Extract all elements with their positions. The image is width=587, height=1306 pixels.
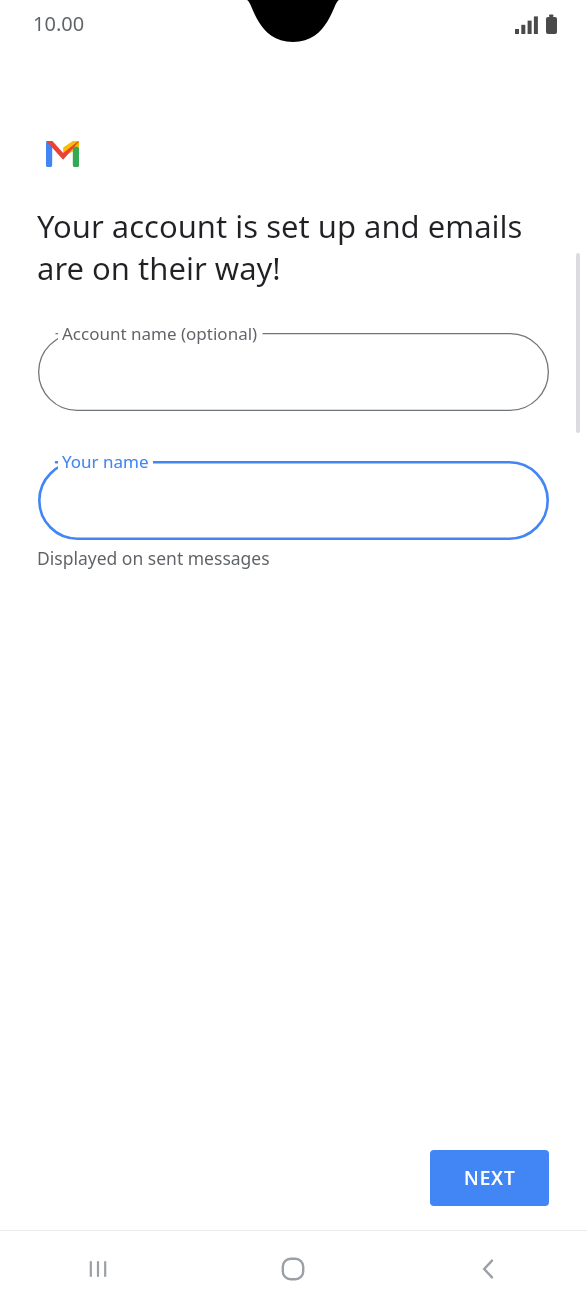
button[interactable]: Back bbox=[391, 1231, 587, 1306]
button[interactable]: Account name (optional) bbox=[38, 333, 549, 411]
staticText: NEXT bbox=[464, 1165, 516, 1191]
staticText: Account name (optional) bbox=[62, 322, 258, 345]
button[interactable]: Recent apps bbox=[0, 1231, 195, 1306]
staticText: Your account is set up and emails are on… bbox=[37, 205, 537, 289]
staticText: Your name bbox=[62, 450, 149, 473]
staticText: Displayed on sent messages bbox=[37, 546, 270, 570]
staticText: 10.00 bbox=[33, 10, 85, 37]
button[interactable]: NEXT bbox=[430, 1150, 549, 1206]
button[interactable]: Your name bbox=[38, 461, 549, 540]
button[interactable]: Home bbox=[195, 1231, 391, 1306]
